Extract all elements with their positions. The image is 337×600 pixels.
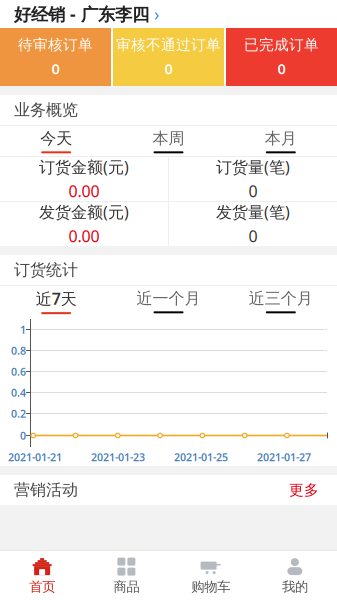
staticText: 0 (20, 428, 26, 443)
staticText: 0 (277, 59, 285, 78)
staticText: 2021-01-23 (91, 450, 145, 464)
staticText: 商品 (113, 579, 139, 595)
staticText: 待审核订单 (18, 36, 93, 54)
staticText: 0 (248, 180, 257, 202)
button[interactable]: 今天 (0, 126, 112, 156)
staticText: 2021-01-25 (174, 450, 228, 464)
staticText: 0 (248, 225, 257, 247)
button[interactable]: 近三个月 (225, 286, 337, 316)
button[interactable]: 更多 (285, 475, 323, 505)
staticText: 2021-01-27 (257, 450, 311, 464)
staticText: 更多 (289, 481, 319, 499)
staticText: 0.4 (11, 385, 26, 400)
staticText: 0.6 (11, 364, 26, 379)
staticText: 2021-01-21 (8, 450, 62, 464)
button[interactable]: 已完成订单 (226, 28, 337, 86)
button[interactable]: 首页 (0, 551, 84, 600)
staticText: 本月 (265, 129, 297, 148)
staticText: 发货量(笔) (216, 201, 290, 222)
staticText: 0.8 (11, 343, 26, 358)
button[interactable]: 待审核订单 (0, 28, 111, 86)
staticText: › (149, 2, 159, 25)
button[interactable]: 本月 (225, 126, 337, 156)
staticText: 首页 (29, 579, 55, 595)
button[interactable]: 近7天 (0, 286, 112, 316)
button[interactable]: 本周 (112, 126, 225, 156)
staticText: 业务概览 (14, 100, 78, 120)
staticText: 好经销 - 广东李四 (14, 2, 149, 25)
button[interactable]: 我的 (253, 551, 337, 600)
staticText: 近7天 (36, 288, 77, 309)
staticText: 购物车 (191, 579, 230, 595)
staticText: 营销活动 (14, 480, 78, 500)
button[interactable]: 购物车 (168, 551, 253, 600)
staticText: 近一个月 (136, 289, 200, 308)
staticText: 我的 (282, 579, 308, 595)
button[interactable]: 审核不通过订单 (113, 28, 224, 86)
button[interactable]: 商品 (84, 551, 168, 600)
staticText: 本周 (152, 129, 184, 148)
button[interactable]: 近一个月 (112, 286, 225, 316)
staticText: 订货金额(元) (39, 156, 129, 177)
staticText: 已完成订单 (244, 36, 319, 54)
staticText: 发货金额(元) (39, 201, 129, 222)
staticText: 0.00 (68, 225, 99, 247)
button[interactable]: 好经销 - 广东李四 (0, 0, 337, 28)
staticText: 近三个月 (249, 289, 313, 308)
staticText: 今天 (40, 129, 72, 148)
staticText: 0 (51, 59, 59, 78)
staticText: 0.00 (68, 180, 99, 202)
staticText: 订货统计 (14, 260, 78, 280)
staticText: 0.2 (11, 406, 26, 421)
staticText: 订货量(笔) (216, 156, 290, 177)
staticText: 1 (20, 322, 26, 337)
staticText: 0 (164, 59, 172, 78)
staticText: 审核不通过订单 (116, 36, 221, 54)
